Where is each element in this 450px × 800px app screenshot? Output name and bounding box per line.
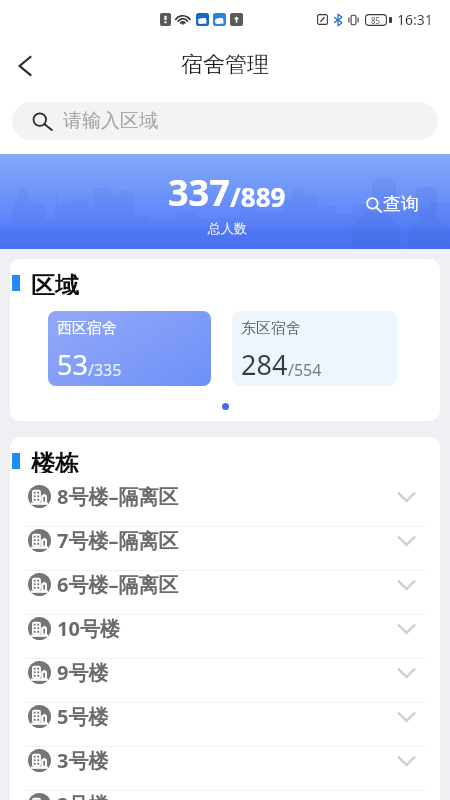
button[interactable]: 8号楼–隔离区	[10, 483, 440, 527]
staticText: /889	[230, 179, 286, 214]
staticText: /554	[288, 359, 322, 381]
button[interactable]: 2号楼	[10, 791, 440, 800]
button[interactable]: 6号楼–隔离区	[10, 571, 440, 615]
staticText: 284	[241, 346, 288, 383]
button[interactable]: Back	[7, 48, 43, 84]
staticText: 3号楼	[57, 747, 109, 774]
staticText: 9号楼	[57, 659, 109, 686]
staticText: 总人数	[208, 220, 247, 236]
button[interactable]: 7号楼–隔离区	[10, 527, 440, 571]
button[interactable]: 东区宿舍	[232, 311, 397, 386]
staticText: 16:31	[397, 10, 433, 29]
staticText: 6号楼–隔离区	[57, 571, 179, 598]
button[interactable]: 10号楼	[10, 615, 440, 659]
staticText: 宿舍管理	[181, 51, 269, 79]
staticText: /335	[88, 359, 122, 381]
staticText: 5号楼	[57, 703, 109, 730]
staticText: 53	[57, 346, 88, 383]
button[interactable]: 查询	[366, 193, 419, 216]
staticText: 337	[168, 168, 230, 217]
staticText: 7号楼–隔离区	[57, 527, 179, 554]
staticText: 区域	[31, 271, 79, 295]
button[interactable]: 请输入区域	[12, 102, 438, 140]
button[interactable]: 9号楼	[10, 659, 440, 703]
button[interactable]: 西区宿舍	[48, 311, 211, 386]
staticText: 请输入区域	[63, 109, 158, 133]
staticText: 85	[371, 15, 381, 26]
staticText: 10号楼	[57, 615, 120, 642]
staticText: 西区宿舍	[57, 319, 117, 338]
button[interactable]: 3号楼	[10, 747, 440, 791]
staticText: 2号楼	[57, 791, 109, 800]
button[interactable]: 5号楼	[10, 703, 440, 747]
staticText: 楼栋	[31, 449, 79, 473]
staticText: 查询	[383, 193, 419, 216]
staticText: 8号楼–隔离区	[57, 483, 179, 510]
staticText: 东区宿舍	[241, 319, 301, 338]
